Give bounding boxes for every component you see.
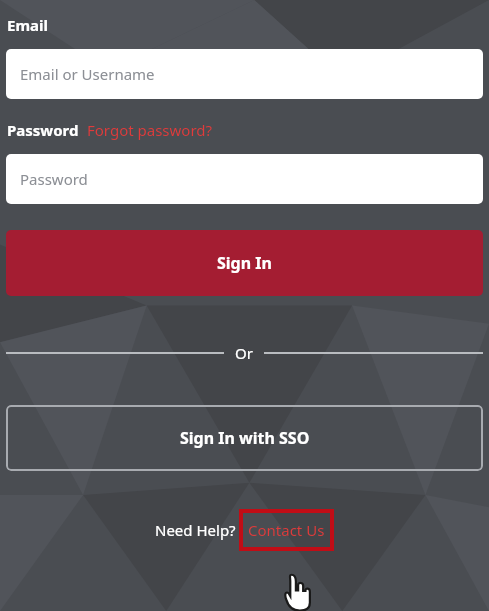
button[interactable]: Sign In with SSO xyxy=(6,405,483,471)
staticText: Email or Username xyxy=(20,64,155,84)
staticText: Sign In xyxy=(217,252,272,274)
staticText: Sign In with SSO xyxy=(180,427,310,449)
staticText: Email xyxy=(7,15,48,35)
other: Pointer xyxy=(283,574,311,611)
staticText: Password xyxy=(20,169,88,189)
staticText: Forgot password? xyxy=(87,120,213,140)
staticText: Or xyxy=(235,343,253,363)
staticText: Password xyxy=(7,120,79,140)
button[interactable]: Contact Us xyxy=(239,509,334,551)
button[interactable]: Sign In xyxy=(6,230,483,296)
button[interactable]: Email or Username xyxy=(6,49,483,99)
button[interactable]: Password xyxy=(6,154,483,204)
button[interactable]: Forgot password? xyxy=(87,120,213,140)
staticText: Contact Us xyxy=(248,520,325,540)
staticText: Need Help? xyxy=(155,520,236,540)
